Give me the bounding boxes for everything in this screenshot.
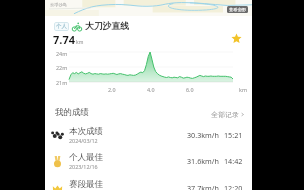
staticText: 6.0 xyxy=(186,86,194,93)
staticText: 31.6km/h xyxy=(187,156,219,166)
button[interactable]: 本次成绩 xyxy=(45,124,252,150)
staticText: 22m xyxy=(56,64,68,71)
staticText: 37.7km/h xyxy=(187,183,219,190)
button[interactable]: 查看全图 xyxy=(227,6,248,13)
button[interactable]: 收藏 xyxy=(231,33,242,44)
staticText: 赛段最佳 xyxy=(69,179,103,190)
staticText: 查看全图 xyxy=(229,7,246,12)
staticText: 全部记录 xyxy=(211,110,239,119)
staticText: 12:20 xyxy=(224,183,243,190)
staticText: 30.3km/h xyxy=(187,130,219,140)
staticText: 个人最佳 xyxy=(69,152,103,163)
staticText: 2024/03/12 xyxy=(69,137,98,144)
staticText: km xyxy=(239,86,247,93)
staticText: 云浮沙岛 xyxy=(50,2,67,7)
staticText: 7.74 xyxy=(53,32,75,47)
staticText: 个人 xyxy=(56,23,67,30)
staticText: 大刀沙直线 xyxy=(85,21,129,32)
staticText: 本次成绩 xyxy=(69,126,103,137)
button[interactable]: 个人最佳 xyxy=(45,150,252,176)
staticText: 14:42 xyxy=(224,156,243,166)
button[interactable]: 赛段最佳 xyxy=(45,177,252,190)
staticText: 24m xyxy=(56,50,68,57)
staticText: 4.0 xyxy=(147,86,155,93)
staticText: 21m xyxy=(56,79,68,86)
staticText: 2023/12/16 xyxy=(69,163,98,170)
staticText: 我的成绩 xyxy=(55,107,89,118)
staticText: 2.0 xyxy=(108,86,116,93)
staticText: 15:21 xyxy=(224,130,243,140)
button[interactable]: 全部记录 xyxy=(211,110,245,119)
staticText: km xyxy=(76,39,84,46)
